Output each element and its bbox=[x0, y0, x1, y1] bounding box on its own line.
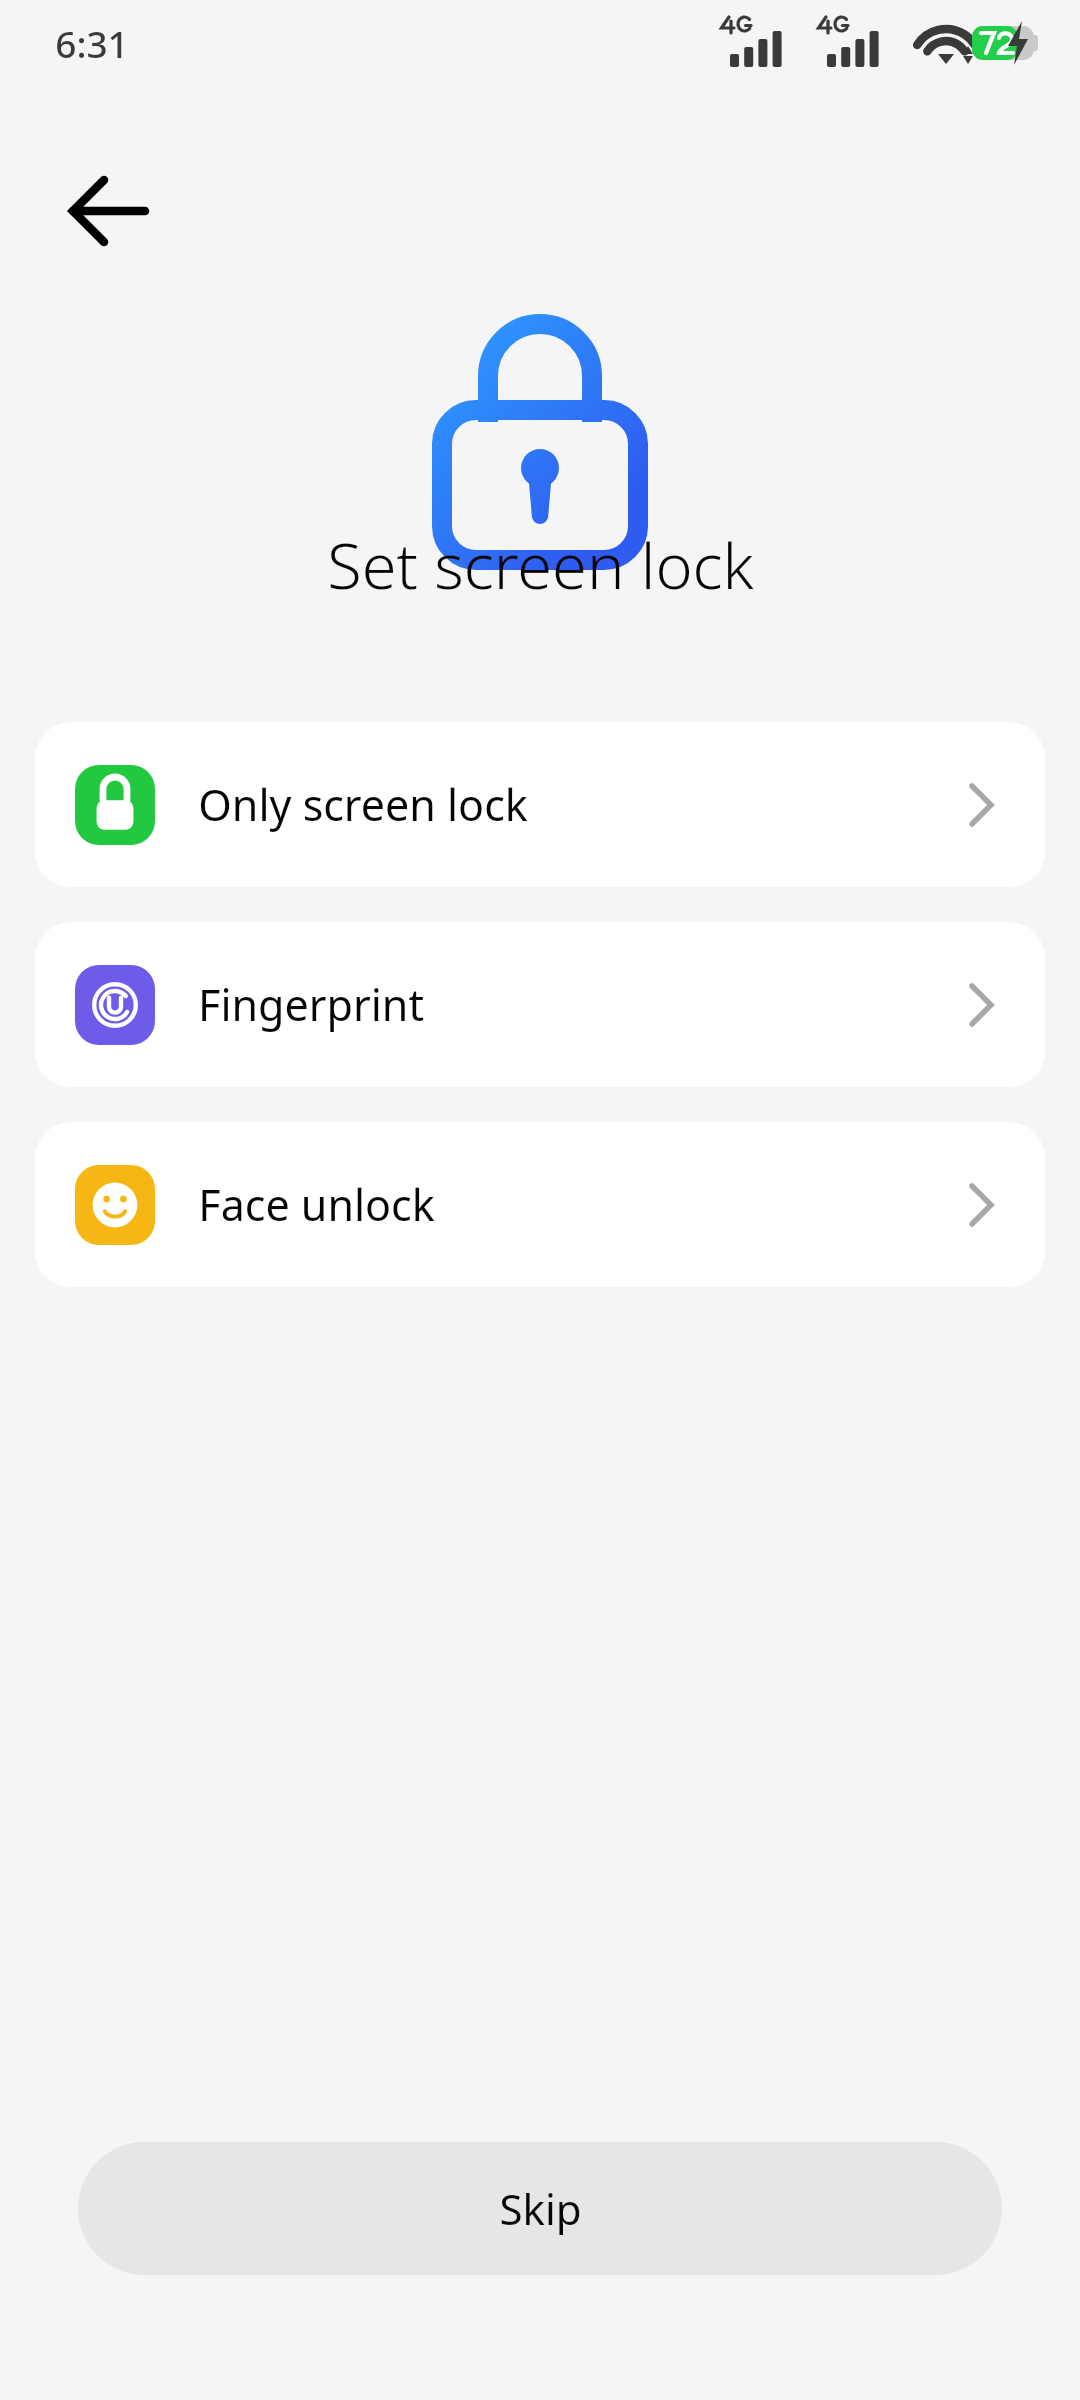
button[interactable]: Back bbox=[55, 160, 165, 270]
button[interactable]: Fingerprint bbox=[35, 922, 1045, 1087]
staticText: Skip bbox=[499, 2180, 582, 2237]
staticText: 6:31 bbox=[55, 18, 129, 68]
button[interactable]: Face unlock bbox=[35, 1122, 1045, 1287]
button[interactable]: Skip bbox=[78, 2142, 1002, 2275]
button[interactable]: Only screen lock bbox=[35, 722, 1045, 887]
staticText: Set screen lock bbox=[327, 522, 754, 608]
staticText: Only screen lock bbox=[198, 775, 528, 834]
staticText: Fingerprint bbox=[198, 975, 424, 1034]
staticText: Face unlock bbox=[198, 1175, 435, 1234]
